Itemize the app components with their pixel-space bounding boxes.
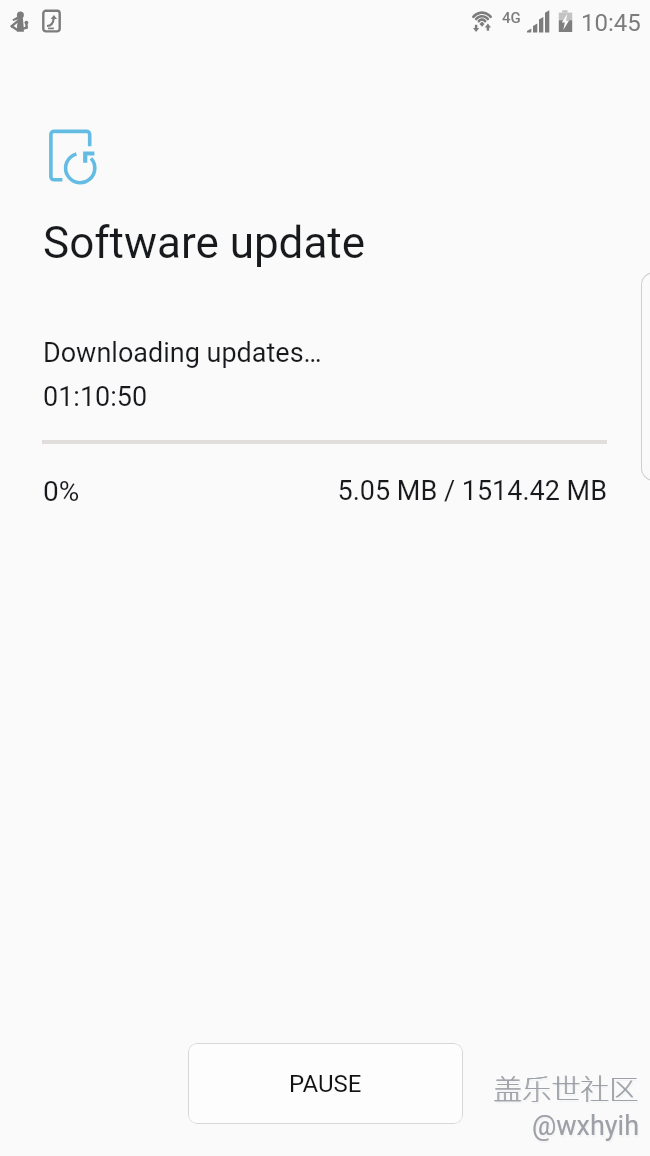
staticText: 01:10:50 bbox=[43, 381, 148, 413]
staticText: 盖乐世社区 bbox=[495, 1068, 641, 1110]
staticText: 4G bbox=[502, 9, 521, 27]
staticText: 10:45 bbox=[581, 9, 641, 37]
button[interactable]: PAUSE bbox=[188, 1043, 463, 1124]
staticText: 0% bbox=[43, 475, 80, 508]
button[interactable]: Open Edge panel bbox=[641, 272, 650, 481]
staticText: PAUSE bbox=[289, 1070, 362, 1098]
staticText: 盖乐世社区 bbox=[493, 1066, 639, 1108]
staticText: 盖乐世社区 bbox=[494, 1066, 640, 1108]
staticText: Software update bbox=[43, 217, 366, 269]
staticText: Downloading updates… bbox=[43, 337, 322, 369]
staticText: 5.05 MB / 1514.42 MB bbox=[0, 475, 607, 507]
staticText: @wxhyih bbox=[533, 1112, 641, 1144]
staticText: @wxhyih bbox=[532, 1110, 640, 1142]
